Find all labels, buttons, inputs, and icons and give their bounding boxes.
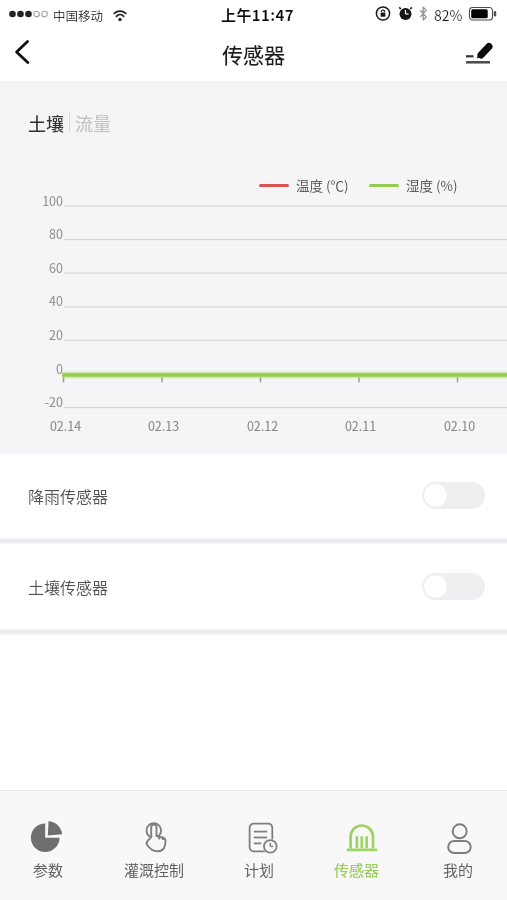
staticText: 我的 [443, 859, 474, 881]
staticText: 80 [0, 224, 63, 242]
button[interactable]: 计划 [209, 791, 310, 900]
staticText: 温度 (℃) [296, 175, 349, 195]
staticText: 计划 [244, 859, 275, 881]
staticText: 传感器 [334, 859, 380, 881]
button[interactable]: 我的 [408, 791, 507, 900]
staticText: 02.10 [428, 416, 491, 434]
staticText: 上午11:47 [221, 4, 295, 26]
staticText: 0 [0, 359, 63, 377]
staticText: 传感器 [222, 39, 285, 69]
staticText: 灌溉控制 [124, 859, 185, 881]
button[interactable]: 流量 [75, 110, 111, 134]
staticText: 中国移动 [53, 6, 104, 24]
button[interactable]: 传感器 [306, 791, 407, 900]
button[interactable]: 灌溉控制 [103, 791, 205, 900]
staticText: 20 [0, 325, 63, 343]
button[interactable] [455, 34, 499, 74]
button[interactable]: 土壤 [28, 110, 64, 134]
staticText: 100 [0, 191, 63, 209]
staticText: 降雨传感器 [28, 484, 109, 507]
staticText: 流量 [75, 110, 111, 134]
staticText: 02.14 [34, 416, 97, 434]
button[interactable]: 土壤传感器 [0, 545, 507, 628]
staticText: 土壤 [28, 110, 64, 134]
staticText: 湿度 (%) [406, 175, 458, 195]
staticText: 土壤传感器 [28, 575, 109, 598]
staticText: 02.12 [231, 416, 294, 434]
staticText: 40 [0, 291, 63, 309]
staticText: 02.13 [132, 416, 195, 434]
button[interactable] [422, 482, 485, 509]
staticText: 参数 [33, 859, 64, 881]
button[interactable]: 参数 [0, 791, 99, 900]
button[interactable] [6, 33, 42, 69]
button[interactable]: 降雨传感器 [0, 454, 507, 537]
staticText: -20 [0, 392, 63, 410]
button[interactable] [422, 573, 485, 600]
staticText: 82% [434, 5, 463, 25]
staticText: 02.11 [329, 416, 392, 434]
staticText: 60 [0, 258, 63, 276]
